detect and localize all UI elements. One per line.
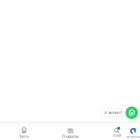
button[interactable]: Chat on WhatsApp xyxy=(125,106,138,119)
staticText: Productos xyxy=(62,134,79,139)
button[interactable]: Buscar xyxy=(104,122,130,140)
button[interactable]: Inicio xyxy=(9,122,39,140)
button[interactable]: ¿Te ayudamos? xyxy=(101,109,124,117)
staticText: Mi cuenta xyxy=(126,135,139,138)
button[interactable]: Productos xyxy=(55,122,85,140)
staticText: Inicio xyxy=(19,134,28,139)
staticText: ¿Te ayudamos? xyxy=(103,111,121,114)
button[interactable]: Mi cuenta xyxy=(125,122,140,140)
staticText: Buscar xyxy=(113,134,121,137)
